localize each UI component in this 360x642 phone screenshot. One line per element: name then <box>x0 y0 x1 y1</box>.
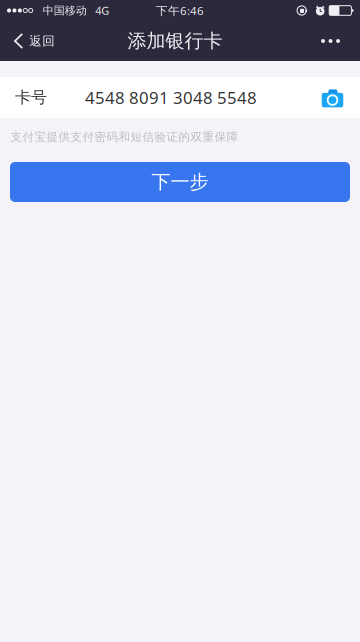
staticText: 返回 <box>29 33 55 49</box>
button[interactable]: 返回 <box>0 21 65 61</box>
button[interactable]: More options <box>305 21 360 61</box>
staticText: 支付宝提供支付密码和短信验证的双重保障 <box>10 130 238 144</box>
staticText: 卡号 <box>15 87 47 108</box>
staticText: 下一步 <box>151 170 208 194</box>
button[interactable]: 下一步 <box>10 162 350 202</box>
staticText: 下午6:46 <box>156 3 204 18</box>
staticText: 添加银行卡 <box>127 29 222 53</box>
button[interactable]: Scan bank card <box>310 77 360 118</box>
staticText: 中国移动 <box>43 4 87 17</box>
staticText: 4G <box>95 3 109 18</box>
button[interactable]: 卡号 <box>0 77 310 118</box>
staticText: 4548 8091 3048 5548 <box>85 86 257 109</box>
